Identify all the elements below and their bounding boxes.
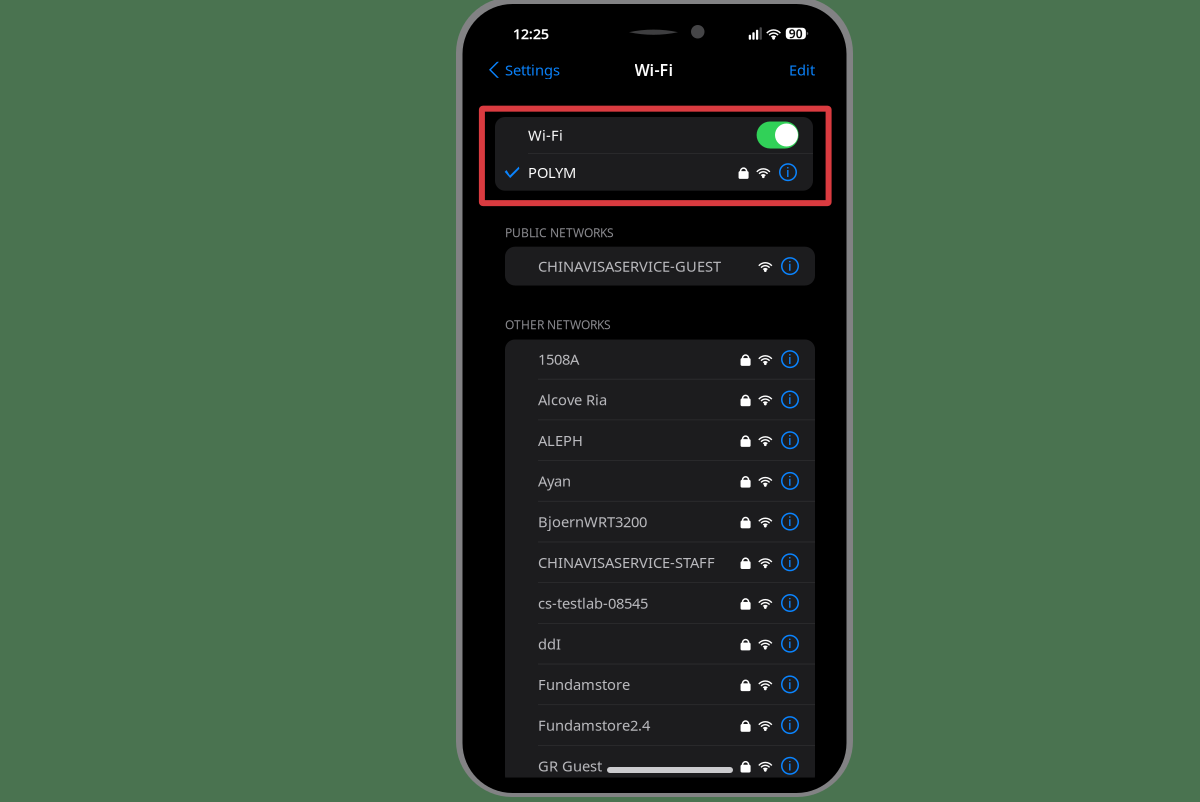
- button[interactable]: Settings: [479, 55, 568, 85]
- staticText: Fundamstore: [538, 675, 630, 694]
- staticText: OTHER NETWORKS: [505, 316, 611, 332]
- staticText: i: [788, 431, 792, 449]
- button[interactable]: Edit: [781, 55, 829, 85]
- staticText: 90: [789, 25, 803, 41]
- staticText: ddI: [538, 634, 561, 653]
- staticText: i: [788, 512, 792, 530]
- button[interactable]: ALEPH: [505, 420, 815, 460]
- button[interactable]: Alcove Ria: [505, 379, 815, 419]
- button[interactable]: BjoernWRT3200: [505, 502, 815, 542]
- button[interactable]: Wi-Fi: [495, 117, 813, 153]
- staticText: Fundamstore2.4: [538, 715, 650, 735]
- staticText: i: [788, 675, 792, 693]
- staticText: i: [788, 390, 792, 408]
- staticText: i: [788, 472, 792, 489]
- staticText: BjoernWRT3200: [538, 512, 647, 531]
- staticText: CHINAVISASERVICE-STAFF: [538, 553, 715, 572]
- staticText: i: [786, 163, 790, 181]
- button[interactable]: 1508A: [505, 339, 815, 379]
- button[interactable]: CHINAVISASERVICE-STAFF: [505, 542, 815, 582]
- button[interactable]: GR Guest: [505, 746, 815, 786]
- staticText: Wi-Fi: [528, 125, 563, 145]
- staticText: i: [788, 257, 792, 274]
- button[interactable]: Fundamstore2.4: [505, 705, 815, 745]
- staticText: CHINAVISASERVICE-GUEST: [538, 256, 721, 276]
- staticText: i: [788, 350, 792, 368]
- button[interactable]: Ayan: [505, 461, 815, 501]
- staticText: i: [788, 716, 792, 733]
- staticText: GR Guest: [538, 756, 602, 776]
- staticText: 12:25: [513, 24, 549, 43]
- staticText: Edit: [789, 60, 815, 80]
- button[interactable]: Fundamstore: [505, 664, 815, 704]
- staticText: i: [788, 594, 792, 611]
- button[interactable]: cs-testlab-08545: [505, 583, 815, 623]
- staticText: Alcove Ria: [538, 390, 607, 409]
- button[interactable]: ddI: [505, 624, 815, 664]
- staticText: ALEPH: [538, 430, 583, 450]
- staticText: i: [788, 634, 792, 652]
- staticText: cs-testlab-08545: [538, 593, 648, 613]
- staticText: Settings: [505, 60, 560, 80]
- staticText: i: [788, 553, 792, 571]
- staticText: Wi-Fi: [634, 59, 673, 80]
- staticText: PUBLIC NETWORKS: [505, 225, 614, 241]
- staticText: Ayan: [538, 471, 571, 491]
- staticText: i: [788, 756, 792, 774]
- button[interactable]: CHINAVISASERVICE-GUEST: [505, 247, 815, 285]
- button[interactable]: POLYM: [495, 154, 813, 191]
- staticText: POLYM: [528, 162, 576, 182]
- staticText: 1508A: [538, 349, 579, 369]
